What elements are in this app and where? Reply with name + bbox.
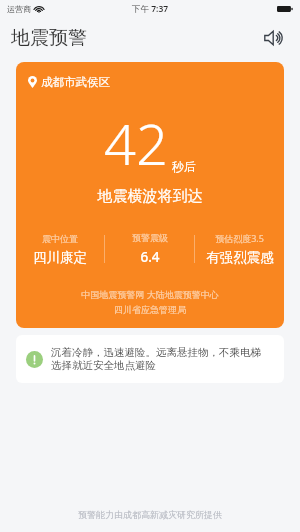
staticText: 预警震级: [132, 232, 168, 243]
staticText: 预警能力由成都高新减灾研究所提供: [0, 509, 300, 520]
staticText: 地震预警: [11, 26, 87, 50]
staticText: 四川康定: [33, 249, 87, 266]
staticText: 运营商: [7, 4, 31, 14]
staticText: 预估烈度3.5: [215, 232, 264, 244]
staticText: 震中位置: [42, 233, 78, 244]
staticText: 6.4: [140, 248, 160, 266]
staticText: 四川省应急管理局: [16, 304, 284, 315]
staticText: 沉着冷静，迅速避险。远离悬挂物，不乘电梯: [51, 346, 261, 359]
button[interactable]: 沉着冷静，迅速避险。远离悬挂物，不乘电梯: [16, 335, 284, 383]
staticText: 42: [104, 105, 168, 181]
staticText: 地震横波将到达: [16, 187, 284, 206]
staticText: 成都市武侯区: [41, 75, 110, 89]
staticText: 秒后: [172, 159, 196, 174]
button[interactable]: Sound: [258, 22, 290, 54]
staticText: 有强烈震感: [206, 249, 274, 266]
staticText: 选择就近安全地点避险: [51, 359, 156, 372]
staticText: 中国地震预警网 大陆地震预警中心: [16, 288, 284, 300]
staticText: 下午 7:37: [132, 3, 169, 15]
button[interactable]: 成都市武侯区: [16, 62, 284, 328]
